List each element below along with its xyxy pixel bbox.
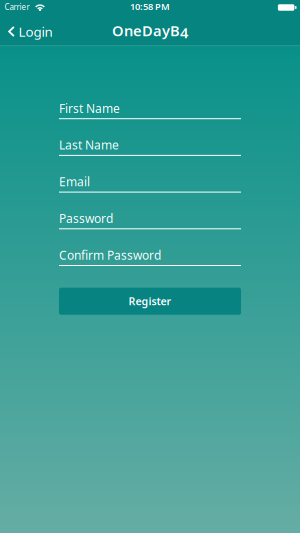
staticText: Login	[18, 23, 52, 40]
staticText: Confirm Password	[59, 247, 161, 263]
button[interactable]: Password	[59, 211, 241, 229]
button[interactable]: Login	[0, 21, 52, 40]
button[interactable]: First Name	[59, 101, 241, 119]
button[interactable]: Email	[59, 175, 241, 193]
staticText: First Name	[59, 100, 120, 116]
button[interactable]: Last Name	[59, 138, 241, 156]
staticText: Email	[59, 174, 90, 190]
staticText: Password	[59, 210, 113, 226]
staticText: 10:58 PM	[130, 0, 170, 13]
staticText: Register	[128, 294, 171, 308]
button[interactable]: Confirm Password	[59, 248, 241, 266]
staticText: Last Name	[59, 137, 119, 153]
staticText: Carrier	[4, 2, 29, 12]
button[interactable]: Register	[59, 288, 241, 315]
staticText: OneDayB4	[112, 21, 188, 42]
